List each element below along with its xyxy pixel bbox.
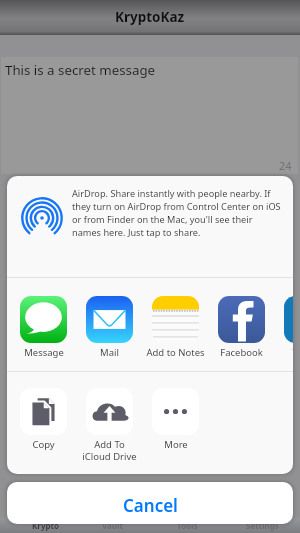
staticText: This is a secret message <box>5 61 156 79</box>
button[interactable]: Add to Notes <box>136 296 215 359</box>
button[interactable]: Cancel <box>7 482 293 524</box>
staticText: Tools <box>177 520 198 531</box>
staticText: More <box>164 438 188 451</box>
button[interactable]: Tools <box>150 518 225 533</box>
staticText: Add to Notes <box>146 346 205 359</box>
button[interactable]: Message <box>7 296 83 359</box>
staticText: 24 <box>279 158 292 173</box>
staticText: Krypto <box>32 520 59 531</box>
button[interactable]: More <box>136 388 215 451</box>
staticText: Twitter <box>292 346 293 359</box>
staticText: Mail <box>100 346 119 359</box>
staticText: Vault <box>102 520 123 531</box>
staticText: Settings <box>246 520 279 531</box>
button[interactable]: Settings <box>225 518 300 533</box>
staticText: Message <box>24 346 64 359</box>
button[interactable]: Vault <box>75 518 150 533</box>
other: AirDrop <box>22 198 62 238</box>
staticText: Cancel <box>123 494 178 517</box>
button[interactable]: Facebook <box>202 296 281 359</box>
staticText: AirDrop. Share instantly with people nea… <box>72 187 282 239</box>
staticText: Facebook <box>220 346 263 359</box>
button[interactable]: Krypto <box>0 518 75 533</box>
button[interactable]: Copy <box>7 388 83 451</box>
button[interactable]: Mail <box>70 296 149 359</box>
staticText: KryptoKaz <box>115 8 185 26</box>
button[interactable]: Add To iCloud Drive <box>70 388 149 463</box>
staticText: Copy <box>32 438 55 451</box>
staticText: Add To iCloud Drive <box>82 438 137 463</box>
button[interactable]: Twitter <box>268 296 293 359</box>
